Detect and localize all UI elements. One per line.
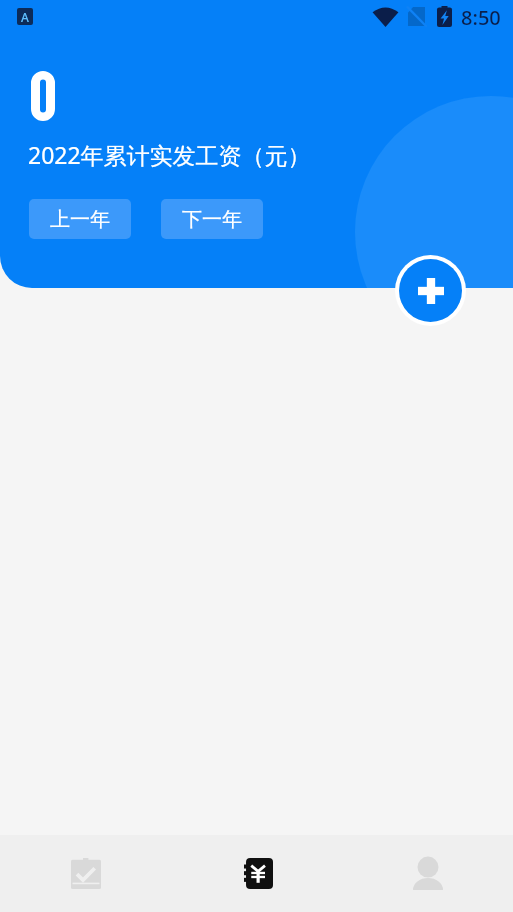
staticText: 上一年 bbox=[50, 207, 110, 232]
staticText: 8:50 bbox=[461, 4, 501, 31]
staticText: 下一年 bbox=[182, 207, 242, 232]
staticText: 2022年累计实发工资（元） bbox=[28, 139, 311, 170]
button[interactable]: Add bbox=[399, 259, 462, 322]
staticText: A bbox=[21, 9, 29, 25]
button[interactable]: 下一年 bbox=[161, 199, 263, 239]
button[interactable]: 上一年 bbox=[29, 199, 131, 239]
button[interactable]: Attendance bbox=[0, 835, 171, 912]
button[interactable]: Salary bbox=[171, 835, 342, 912]
button[interactable]: Profile bbox=[342, 835, 513, 912]
